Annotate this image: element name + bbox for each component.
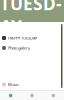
button[interactable]: Browse [21, 91, 43, 100]
button[interactable]: Music [0, 79, 64, 89]
button[interactable]: Photo gallery [0, 43, 64, 53]
button[interactable]: Profile [43, 91, 64, 100]
staticText: Music [8, 82, 19, 87]
staticText: HAPPY TUESDAY [8, 35, 37, 41]
button[interactable]: HAPPY TUESDAY [0, 33, 64, 43]
staticText: Photo gallery [8, 45, 30, 51]
staticText: TUESDAY [0, 0, 62, 38]
button[interactable]: Today [0, 91, 21, 100]
